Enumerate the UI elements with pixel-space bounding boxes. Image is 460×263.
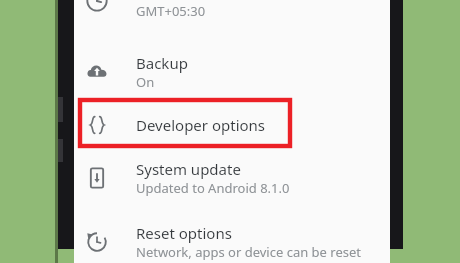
button[interactable]: Developer options highlighted <box>80 100 290 146</box>
button[interactable]: Backup <box>74 45 390 101</box>
staticText: Developer options <box>136 115 266 135</box>
staticText: Network, apps or device can be reset <box>136 243 361 261</box>
other: System update <box>86 167 108 189</box>
staticText: Updated to Android 8.1.0 <box>136 179 290 197</box>
staticText: Backup <box>136 53 188 73</box>
other: Date & time <box>86 0 108 12</box>
staticText: System update <box>136 159 241 179</box>
staticText: Reset options <box>136 223 232 243</box>
button[interactable]: System update <box>74 151 390 207</box>
staticText: GMT+05:30 <box>136 2 206 20</box>
button[interactable]: Reset options <box>74 215 390 263</box>
other: Reset options <box>86 231 108 253</box>
staticText: On <box>136 73 155 91</box>
other: Developer options <box>86 114 108 136</box>
button[interactable]: Date & time <box>74 0 390 30</box>
other: Backup <box>86 61 108 83</box>
button[interactable]: Developer options <box>74 102 390 148</box>
